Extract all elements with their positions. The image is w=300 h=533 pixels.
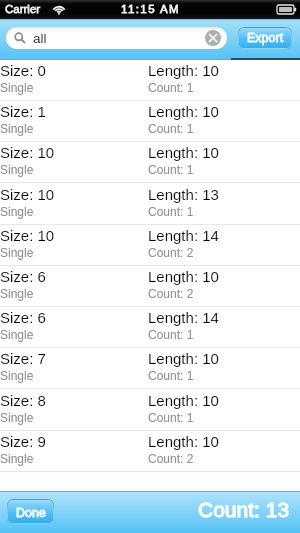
staticText: Size: 6 — [0, 268, 46, 285]
staticText: Single — [0, 246, 34, 259]
staticText: Length: 10 — [148, 433, 219, 450]
staticText: Length: 14 — [148, 227, 219, 244]
staticText: Single — [0, 81, 34, 94]
staticText: Count: 2 — [148, 452, 194, 465]
button[interactable]: Size: 0 — [0, 60, 300, 101]
button[interactable]: Size: 9 — [0, 431, 300, 472]
staticText: Size: 8 — [0, 392, 46, 409]
staticText: Count: 13 — [198, 498, 290, 521]
staticText: Size: 10 — [0, 227, 55, 244]
staticText: Length: 10 — [148, 103, 219, 120]
staticText: Count: 1 — [148, 122, 194, 135]
other: Wi-Fi — [52, 4, 66, 15]
staticText: all — [33, 31, 47, 46]
staticText: Single — [0, 122, 34, 135]
other: Battery — [277, 5, 296, 14]
staticText: 11:15 AM — [121, 3, 180, 16]
staticText: Size: 0 — [0, 62, 46, 79]
staticText: Length: 10 — [148, 392, 219, 409]
staticText: Size: 10 — [0, 186, 55, 203]
staticText: Single — [0, 205, 34, 218]
button[interactable]: Size: 10 — [0, 184, 300, 225]
staticText: Single — [0, 287, 34, 300]
staticText: Count: 1 — [148, 205, 194, 218]
staticText: Size: 7 — [0, 350, 46, 367]
staticText: Length: 13 — [148, 186, 219, 203]
staticText: Length: 14 — [148, 309, 219, 326]
button[interactable]: Size: 6 — [0, 266, 300, 307]
staticText: Export — [247, 31, 284, 45]
button[interactable]: Clear search text — [205, 30, 221, 46]
staticText: Single — [0, 163, 34, 176]
staticText: Single — [0, 328, 34, 341]
button[interactable]: Size: 6 — [0, 307, 300, 348]
staticText: Count: 1 — [148, 369, 194, 382]
staticText: Count: 1 — [148, 81, 194, 94]
staticText: Count: 1 — [148, 328, 194, 341]
button[interactable]: Size: 1 — [0, 101, 300, 142]
staticText: Single — [0, 369, 34, 382]
staticText: Size: 9 — [0, 433, 46, 450]
staticText: Size: 10 — [0, 144, 55, 161]
staticText: Count: 1 — [148, 411, 194, 424]
staticText: Single — [0, 452, 34, 465]
staticText: Done — [16, 506, 46, 520]
staticText: Size: 6 — [0, 309, 46, 326]
staticText: Length: 10 — [148, 350, 219, 367]
staticText: Size: 1 — [0, 103, 46, 120]
button[interactable]: Size: 10 — [0, 225, 300, 266]
button[interactable]: Size: 8 — [0, 390, 300, 431]
button[interactable]: Done — [7, 499, 54, 524]
button[interactable]: Export — [238, 27, 292, 49]
staticText: Count: 2 — [148, 287, 194, 300]
button[interactable]: Size: 10 — [0, 142, 300, 183]
button[interactable]: Size: 7 — [0, 348, 300, 389]
staticText: Carrier — [5, 3, 41, 16]
staticText: Length: 10 — [148, 62, 219, 79]
staticText: Length: 10 — [148, 144, 219, 161]
staticText: Single — [0, 411, 34, 424]
staticText: Count: 2 — [148, 246, 194, 259]
staticText: Count: 1 — [148, 163, 194, 176]
button[interactable]: all — [6, 27, 227, 49]
staticText: Length: 10 — [148, 268, 219, 285]
